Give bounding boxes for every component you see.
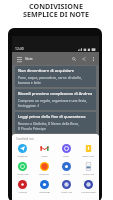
staticText: Ricordi prossimo compleanno di Andrea bbox=[18, 91, 93, 96]
button[interactable]: Viber bbox=[55, 142, 77, 160]
staticText: Comprare un regalo, organizzare una fest… bbox=[18, 98, 88, 108]
staticText: SEMPLICE DI NOTE bbox=[23, 9, 89, 19]
button[interactable]: Condivisione bbox=[77, 178, 99, 196]
staticText: Salva PDF bbox=[83, 172, 94, 175]
staticText: CONDIVISIONE bbox=[29, 1, 83, 11]
button[interactable]: Skype bbox=[55, 160, 77, 178]
staticText: Copia link bbox=[61, 190, 72, 193]
staticText: Messaggi bbox=[39, 190, 50, 193]
staticText: Condivisione bbox=[81, 190, 96, 193]
button[interactable]: Keep Note bbox=[77, 142, 99, 160]
button[interactable]: Leggi prima della fine di quarantena bbox=[15, 112, 96, 133]
staticText: 12:40 bbox=[15, 46, 24, 51]
button[interactable]: Invia file bbox=[33, 160, 55, 178]
button[interactable]: Search bbox=[70, 55, 78, 63]
staticText: Acrobat bbox=[18, 190, 27, 193]
button[interactable]: Messaggi bbox=[33, 178, 55, 196]
button[interactable]: Acrobat bbox=[12, 178, 33, 196]
staticText: Viber bbox=[63, 154, 69, 157]
button[interactable]: Telegram bbox=[12, 142, 33, 160]
button[interactable]: Non dimenticare di acquistare bbox=[15, 66, 96, 87]
button[interactable]: WhatsApp bbox=[12, 160, 33, 178]
button[interactable]: Copia link bbox=[55, 178, 77, 196]
staticText: Invia file bbox=[39, 172, 49, 175]
staticText: Leggi prima della fine di quarantena bbox=[18, 114, 86, 119]
staticText: Non dimenticare di acquistare bbox=[18, 68, 75, 73]
button[interactable]: More options bbox=[90, 56, 96, 62]
staticText: Skype bbox=[63, 172, 70, 175]
button[interactable]: Menu bbox=[15, 55, 23, 63]
staticText: Gmail bbox=[41, 154, 48, 157]
button[interactable]: Share bbox=[80, 55, 88, 63]
staticText: Romeo e Giulietta, Il Nome della Rosa, I… bbox=[18, 121, 79, 131]
staticText: Keep Note bbox=[82, 154, 94, 157]
button[interactable]: Gmail bbox=[33, 142, 55, 160]
staticText: WhatsApp bbox=[17, 172, 29, 175]
staticText: Telegram bbox=[17, 154, 28, 157]
staticText: Note bbox=[25, 56, 33, 61]
button[interactable]: Salva PDF bbox=[77, 160, 99, 178]
staticText: Condividi con bbox=[16, 137, 34, 141]
staticText: Pane, acqua, pomodoro, carne di vitello,… bbox=[18, 75, 82, 85]
button[interactable]: Ricordi prossimo compleanno di Andrea bbox=[15, 89, 96, 110]
